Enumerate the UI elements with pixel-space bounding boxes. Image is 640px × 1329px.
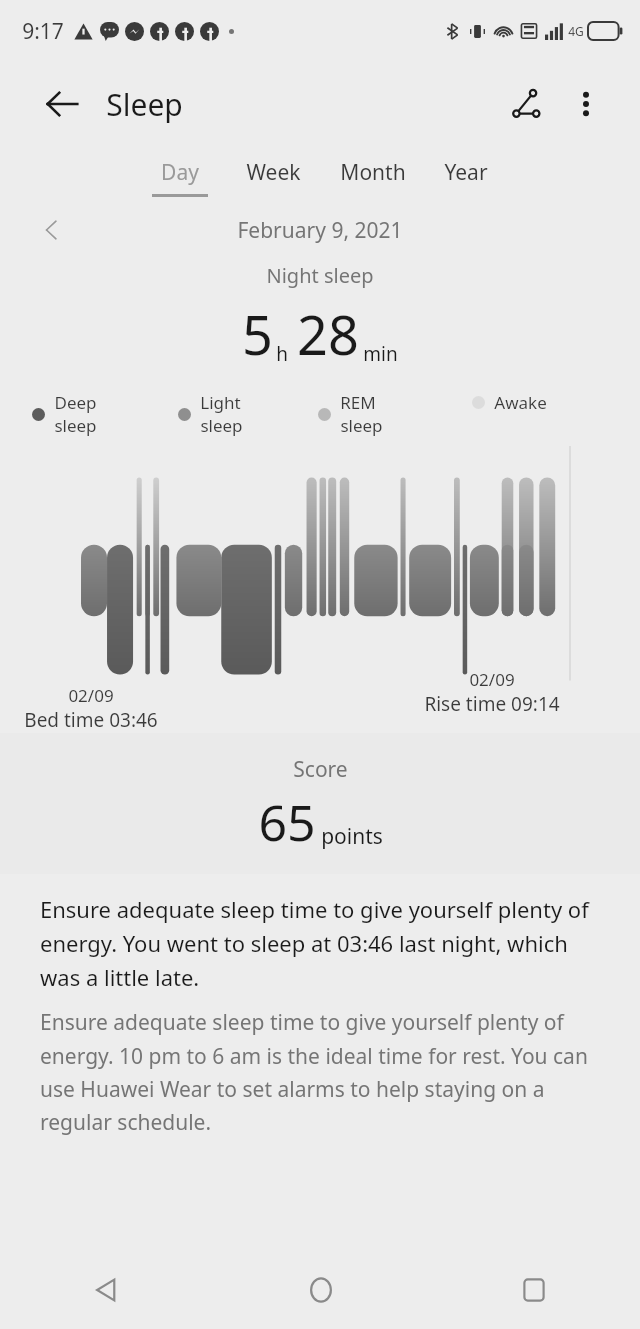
staticText: Sleep — [106, 84, 183, 125]
button[interactable]: Back — [0, 1251, 214, 1329]
button[interactable]: Back — [36, 78, 88, 130]
staticText: Score — [293, 755, 348, 784]
button[interactable]: Previous day — [32, 210, 72, 250]
button[interactable]: Month — [338, 154, 408, 201]
button[interactable]: Share — [498, 76, 554, 132]
staticText: 02/09 — [469, 668, 515, 691]
staticText: Day — [161, 158, 199, 187]
staticText: h — [276, 341, 288, 367]
staticText: sleep — [340, 414, 383, 437]
button[interactable]: Year — [442, 154, 490, 201]
staticText: Light — [200, 391, 241, 414]
staticText: 28 — [297, 297, 359, 371]
staticText: sleep — [54, 414, 97, 437]
staticText: Ensure adequate sleep time to give yours… — [40, 1008, 604, 1136]
staticText: min — [363, 341, 398, 367]
staticText: Year — [444, 158, 488, 187]
staticText: sleep — [200, 414, 243, 437]
staticText: February 9, 2021 — [237, 216, 403, 245]
staticText: 9:17 — [22, 17, 64, 46]
staticText: Bed time 03:46 — [24, 707, 158, 733]
staticText: Week — [246, 158, 301, 187]
staticText: 4G — [568, 23, 584, 39]
staticText: Rise time 09:14 — [424, 691, 560, 717]
button[interactable]: Recent apps — [427, 1251, 640, 1329]
button[interactable]: More options — [560, 78, 612, 130]
staticText: 65 — [258, 788, 316, 856]
button[interactable]: Day — [150, 154, 210, 201]
button[interactable]: Week — [244, 154, 303, 201]
staticText: Awake — [494, 391, 547, 414]
staticText: REM — [340, 391, 376, 414]
staticText: Ensure adequate sleep time to give yours… — [40, 894, 604, 992]
staticText: Month — [340, 158, 406, 187]
staticText: 02/09 — [68, 684, 114, 707]
staticText: Night sleep — [266, 262, 374, 289]
staticText: 5 — [242, 297, 273, 371]
staticText: Deep — [54, 391, 97, 414]
staticText: points — [321, 822, 383, 851]
button[interactable]: Home — [214, 1251, 427, 1329]
